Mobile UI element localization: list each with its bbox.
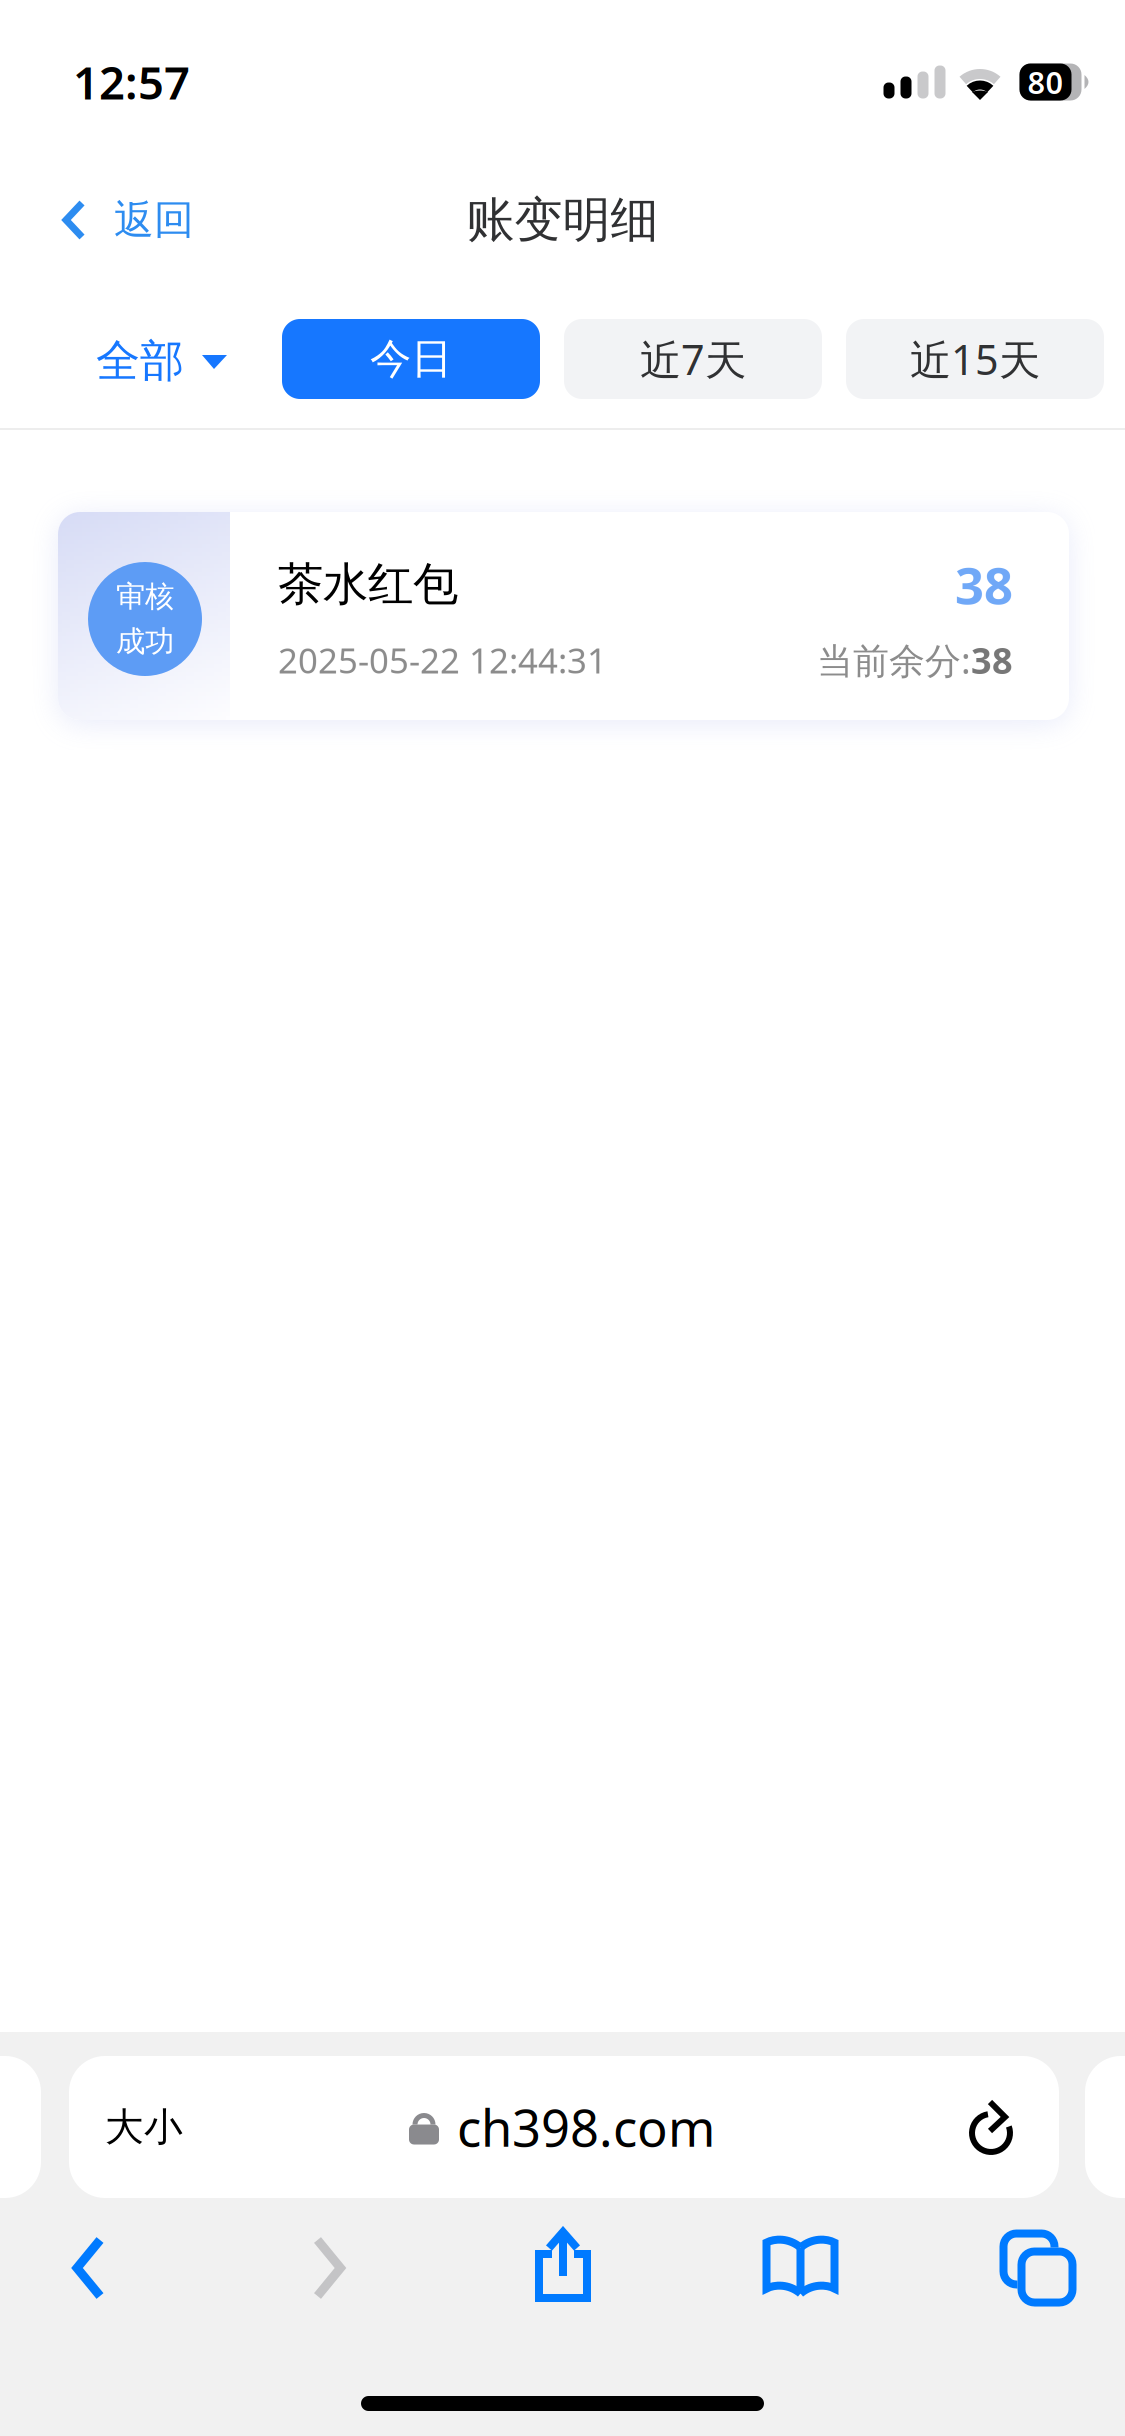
staticText: 成功: [116, 623, 174, 659]
staticText: 审核: [116, 578, 174, 614]
button[interactable]: 今日: [282, 319, 540, 399]
staticText: ch398.com: [457, 2093, 715, 2161]
button[interactable]: Bookmarks: [735, 2207, 865, 2328]
button[interactable]: 近7天: [564, 319, 822, 399]
staticText: 全部: [96, 334, 184, 388]
button[interactable]: 近15天: [846, 319, 1104, 399]
button[interactable]: Back: [22, 2207, 155, 2329]
button[interactable]: Tabs: [973, 2207, 1103, 2329]
staticText: 38: [955, 551, 1013, 618]
staticText: 茶水红包: [278, 557, 458, 612]
staticText: 返回: [114, 195, 194, 244]
staticText: 今日: [370, 334, 452, 384]
staticText: 38: [971, 636, 1013, 684]
staticText: 12:57: [73, 52, 190, 112]
button[interactable]: 全部: [0, 314, 227, 404]
button[interactable]: Share: [503, 2207, 628, 2329]
button[interactable]: Forward: [262, 2207, 395, 2329]
staticText: 账变明细: [466, 190, 658, 249]
staticText: 80: [1027, 62, 1063, 102]
button[interactable]: 返回: [0, 181, 214, 258]
staticText: 2025-05-22 12:44:31: [278, 637, 607, 683]
staticText: 大小: [105, 2103, 183, 2151]
button[interactable]: 审核: [58, 512, 1069, 720]
button[interactable]: 大小: [69, 2056, 1059, 2198]
staticText: 近7天: [640, 332, 746, 386]
staticText: 当前余分:: [817, 636, 971, 684]
staticText: 近15天: [910, 332, 1040, 386]
